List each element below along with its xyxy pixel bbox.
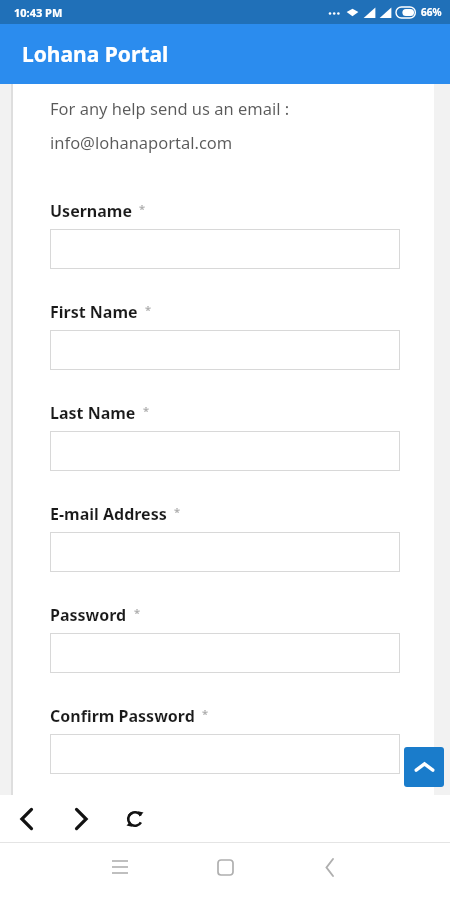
staticText: E-mail Address: [50, 503, 167, 525]
staticText: *: [143, 403, 150, 418]
staticText: *: [134, 605, 141, 620]
button[interactable]: Refresh: [108, 795, 162, 843]
staticText: 10:43 PM: [14, 5, 63, 20]
staticText: *: [202, 706, 209, 721]
staticText: Username: [50, 200, 132, 222]
staticText: For any help send us an email :: [50, 97, 290, 119]
button[interactable]: [50, 229, 400, 269]
button[interactable]: [50, 633, 400, 673]
staticText: Password: [50, 604, 127, 626]
staticText: First Name: [50, 301, 138, 323]
staticText: Last Name: [50, 402, 136, 424]
staticText: 66%: [421, 5, 442, 19]
staticText: info@lohanaportal.com: [50, 131, 233, 153]
button[interactable]: [50, 734, 400, 774]
staticText: Lohana Portal: [22, 40, 169, 69]
staticText: Confirm Password: [50, 705, 195, 727]
staticText: *: [139, 201, 146, 216]
button[interactable]: [50, 431, 400, 471]
button[interactable]: Home: [201, 843, 249, 891]
button[interactable]: Scroll to top: [404, 747, 444, 787]
button[interactable]: [50, 330, 400, 370]
button[interactable]: Forward: [54, 795, 108, 843]
button[interactable]: Back: [306, 843, 354, 891]
button[interactable]: [50, 532, 400, 572]
button[interactable]: Recents: [96, 843, 144, 891]
staticText: *: [174, 504, 181, 519]
staticText: *: [145, 302, 152, 317]
button[interactable]: Back: [0, 795, 54, 843]
